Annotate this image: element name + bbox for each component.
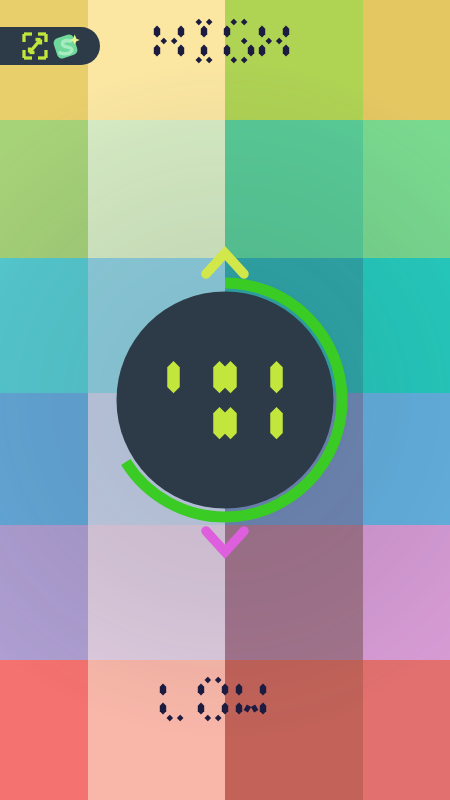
button[interactable]: HIGH (152, 16, 296, 68)
button[interactable]: Decrease (198, 524, 252, 558)
button[interactable]: LOW (158, 674, 298, 726)
button[interactable]: Open in full screen (0, 27, 100, 65)
button[interactable]: Level 48 (94, 269, 356, 531)
button[interactable]: Increase (198, 247, 252, 281)
